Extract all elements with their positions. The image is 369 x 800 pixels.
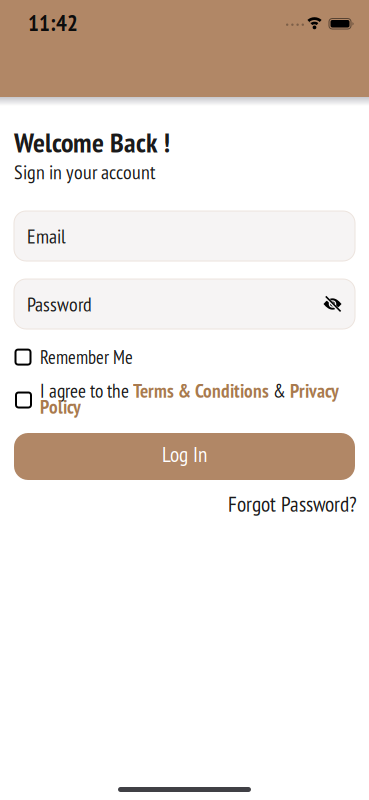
button[interactable]: Remember Me <box>15 345 133 369</box>
staticText: Email <box>27 223 66 249</box>
staticText: Policy <box>40 394 81 419</box>
staticText: Welcome Back ! <box>14 124 170 160</box>
button[interactable]: Show password <box>323 295 342 312</box>
staticText: & <box>269 378 290 403</box>
staticText: Forgot Password? <box>228 490 357 518</box>
staticText: Terms & Conditions <box>133 378 269 403</box>
staticText: 11:42 <box>28 8 78 37</box>
staticText: Password <box>27 291 92 317</box>
staticText: Sign in your account <box>14 159 156 185</box>
staticText: Log In <box>162 440 207 468</box>
button[interactable]: Email <box>14 211 355 261</box>
staticText: Remember Me <box>40 345 133 369</box>
button[interactable]: Forgot Password? <box>228 490 357 518</box>
staticText: I agree to the <box>40 378 133 403</box>
button[interactable]: Password <box>14 279 355 329</box>
staticText: Privacy <box>290 378 339 403</box>
button[interactable]: I agree to the <box>15 378 356 415</box>
button[interactable]: Log In <box>14 433 355 480</box>
